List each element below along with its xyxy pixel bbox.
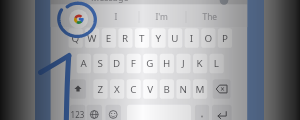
button[interactable]: Gboard keyboard screenshot	[0, 0, 300, 120]
